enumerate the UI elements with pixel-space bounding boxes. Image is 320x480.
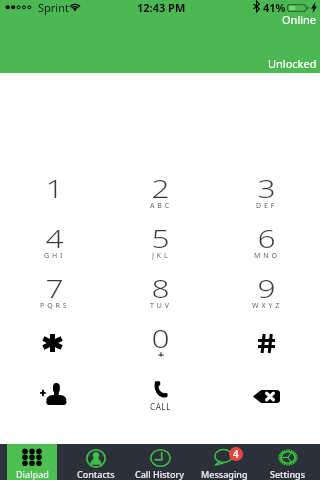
button[interactable]: 9 [213,270,319,314]
button[interactable]: Backspace [213,376,319,416]
button[interactable]: 2 [107,170,213,214]
button[interactable]: Add contact [1,374,107,414]
staticText: 41% [263,0,286,15]
button[interactable]: 4 [192,444,256,480]
button[interactable]: 4 [1,220,107,264]
staticText: TUV [150,301,172,310]
staticText: WXYZ [252,301,283,310]
staticText: Dialpad [16,468,49,480]
staticText: Call History [135,468,185,480]
button[interactable]: 8 [107,270,213,314]
staticText: Unlocked [268,56,317,71]
staticText: 2 [151,170,170,205]
button[interactable]: 0 [107,320,213,364]
staticText: 4 [233,447,239,461]
button[interactable]: Pound [213,323,319,363]
button[interactable]: Call History [128,444,192,480]
staticText: JKL [152,251,171,260]
staticText: 6 [257,220,276,255]
staticText: 9 [257,270,276,305]
staticText: 4 [45,220,64,255]
staticText: GHI [44,251,66,260]
button[interactable]: Contacts [64,444,128,480]
button[interactable]: CALL [110,381,210,417]
staticText: CALL [150,401,171,412]
staticText: ABC [150,201,173,210]
button[interactable]: Star [0,323,105,363]
staticText: 12:43 PM [137,0,186,15]
button[interactable]: Dialpad [7,444,57,480]
staticText: Messaging [201,468,248,480]
staticText: 5 [151,220,170,255]
button[interactable]: 6 [213,220,319,264]
staticText: Contacts [77,468,115,480]
staticText: Online [282,12,317,27]
staticText: Sprint [38,0,69,15]
button[interactable]: 7 [1,270,107,314]
staticText: 3 [257,170,276,205]
staticText: MNO [254,251,280,260]
staticText: 7 [45,270,64,305]
staticText: 0 [151,320,170,355]
button[interactable]: 5 [107,220,213,264]
staticText: PQRS [40,301,70,310]
button[interactable]: 3 [213,170,319,214]
staticText: 1 [45,170,64,205]
staticText: 8 [151,270,170,305]
button[interactable]: Settings [256,444,320,480]
button[interactable]: 1 [1,170,107,214]
staticText: DEF [256,201,278,210]
staticText: Settings [270,468,306,480]
